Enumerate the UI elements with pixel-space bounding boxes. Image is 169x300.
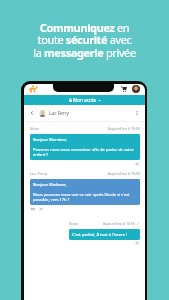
staticText: Bonjour Madame,	[33, 182, 67, 187]
button[interactable]: Mon accès	[24, 95, 145, 105]
button[interactable]: Delete	[38, 207, 44, 211]
button[interactable]: Bonjour Monsieur,	[30, 134, 140, 160]
staticText: Aujourd'hui à 10:55 ✓	[103, 221, 140, 226]
staticText: Aujourd'hui à 10:05	[108, 126, 140, 131]
button[interactable]: Cart	[121, 86, 127, 92]
button[interactable]: C'est parfait, À tout à l'heure !	[69, 229, 140, 240]
button[interactable]: Home	[28, 85, 38, 93]
staticText: Communiquez en toute sécurité avec la me…	[33, 20, 136, 60]
button[interactable]: Back	[28, 109, 36, 117]
staticText: Vous	[30, 126, 40, 131]
button[interactable]: Bonjour Madame,	[30, 179, 140, 205]
button[interactable]: Attach	[30, 207, 36, 211]
staticText: Bonjour Monsieur,	[33, 137, 68, 142]
button[interactable]: Delete	[134, 162, 140, 166]
staticText: Pouvons nous nous rencontrer afin de par…	[33, 147, 137, 157]
staticText: Nous pouvons nous voir ce soir après l'é…	[33, 192, 137, 202]
staticText: Luc Ferry	[30, 171, 48, 176]
staticText: Vous	[69, 221, 79, 226]
staticText: Aujourd'hui à 10:50	[108, 171, 140, 176]
staticText: C'est parfait, À tout à l'heure !	[72, 232, 128, 237]
staticText: Mon accès	[73, 97, 97, 103]
button[interactable]: More options	[133, 109, 141, 117]
staticText: Luc Ferry	[49, 110, 69, 116]
button[interactable]: Profile	[132, 85, 140, 93]
button[interactable]: Delete	[134, 241, 140, 245]
